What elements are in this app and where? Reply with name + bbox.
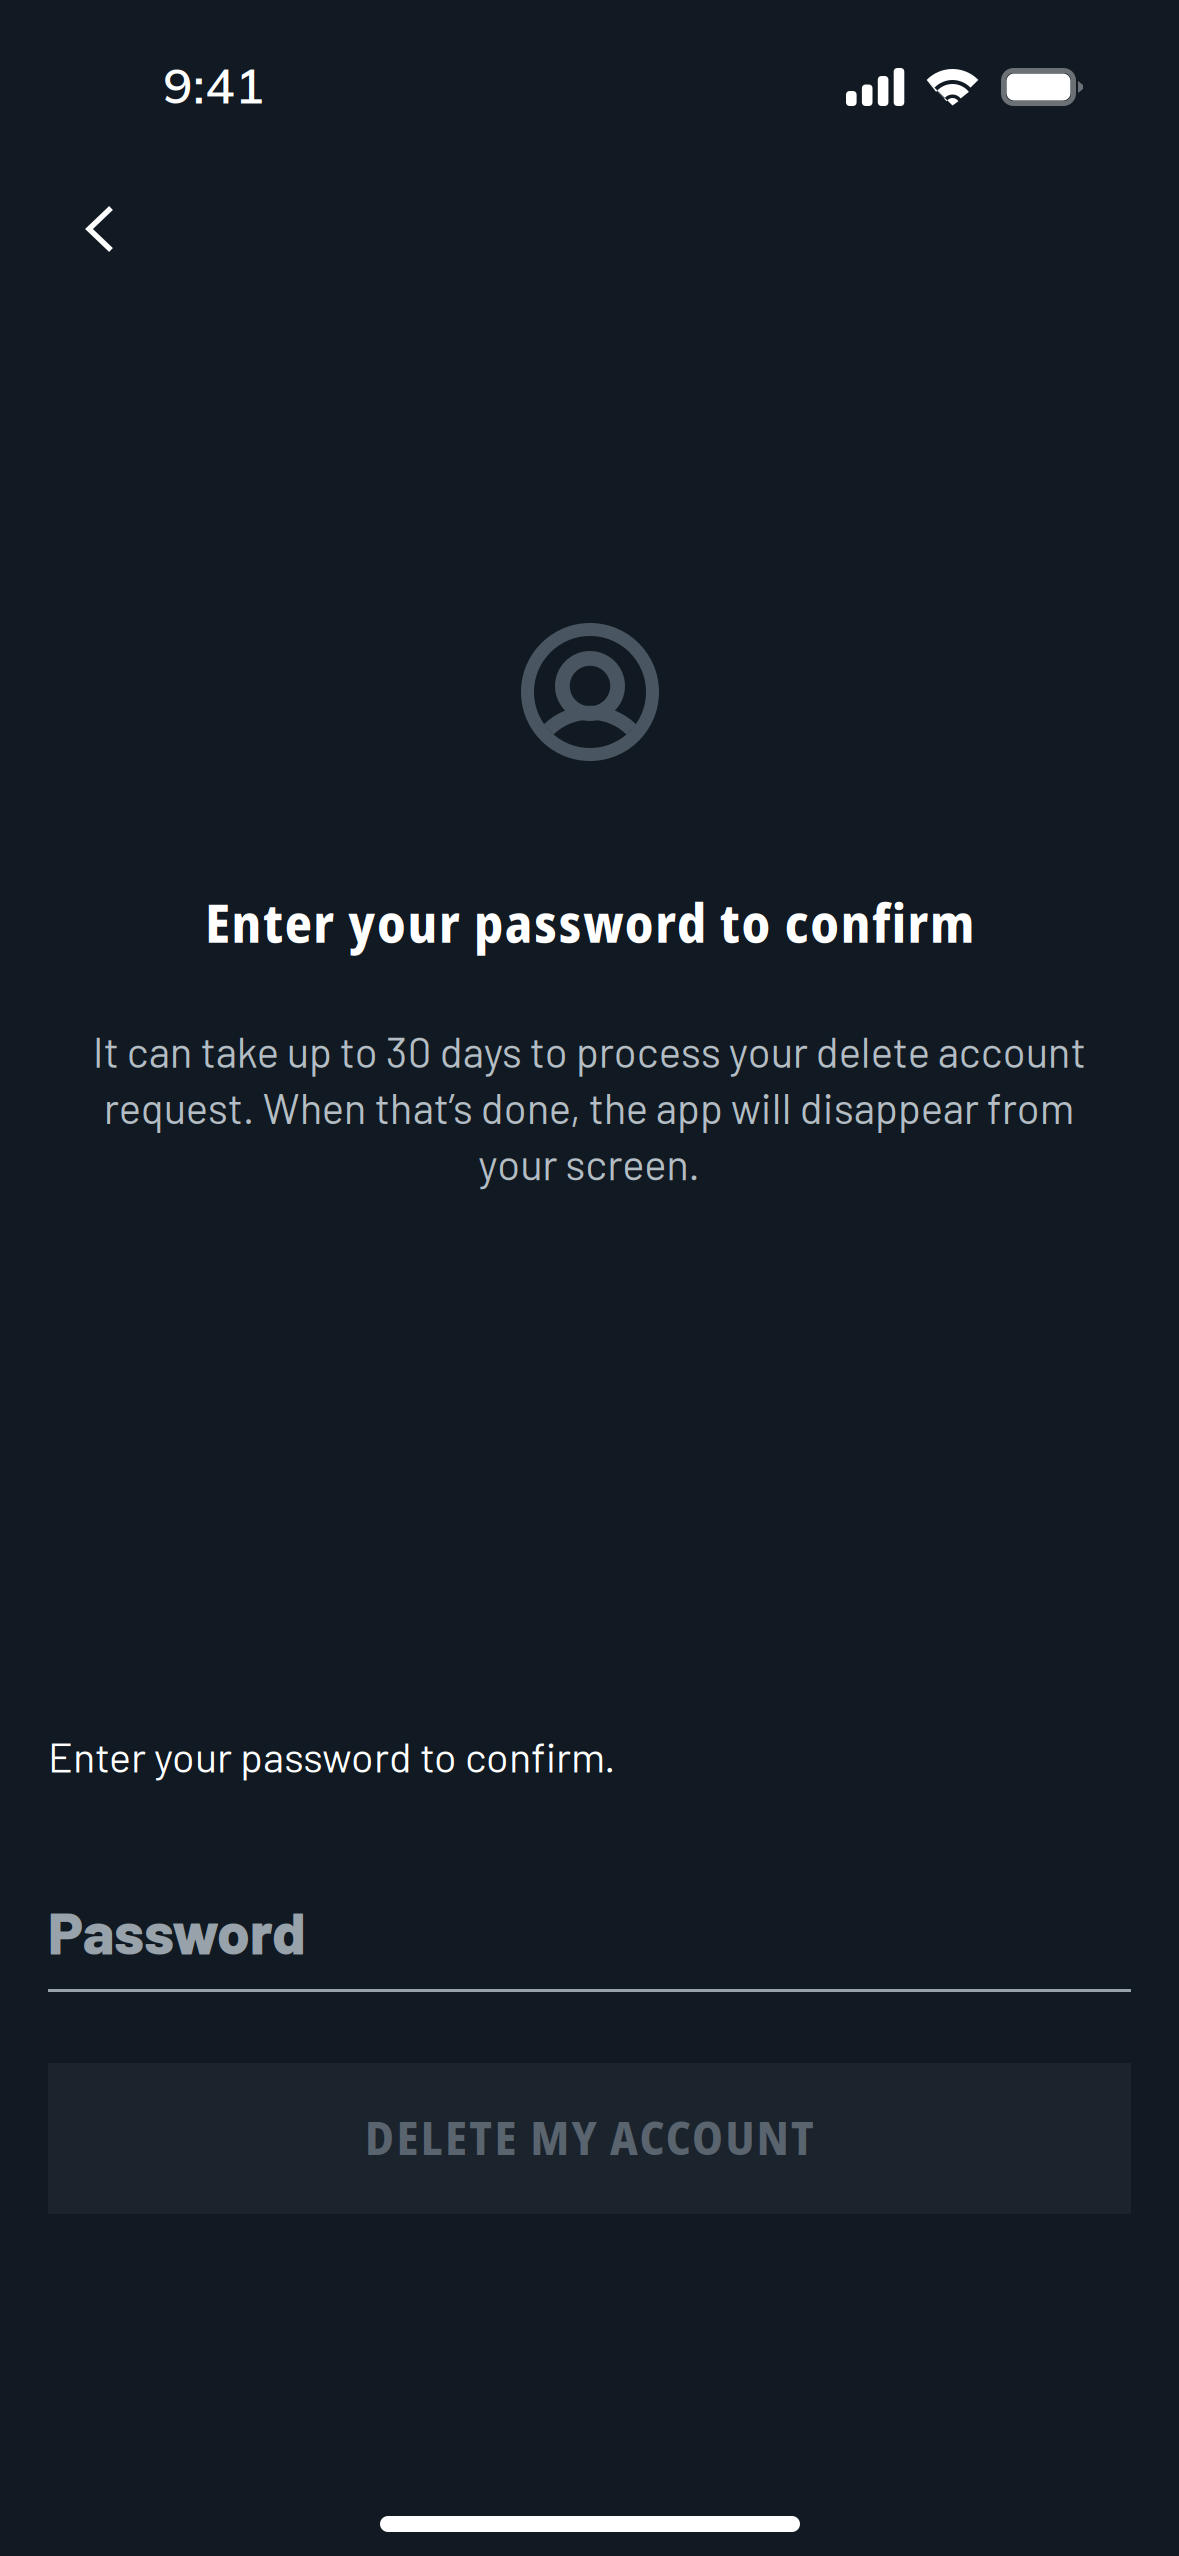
staticText: Enter your password to confirm (205, 886, 974, 958)
staticText: It can take up to 30 days to process you… (92, 1026, 1085, 1189)
staticText: 9:41 (163, 54, 265, 116)
button[interactable]: DELETE MY ACCOUNT (48, 2063, 1131, 2214)
staticText: Enter your password to confirm. (48, 1731, 615, 1781)
staticText: Password (48, 1896, 306, 1966)
staticText: DELETE MY ACCOUNT (365, 2105, 814, 2169)
button[interactable]: Back (54, 178, 174, 280)
